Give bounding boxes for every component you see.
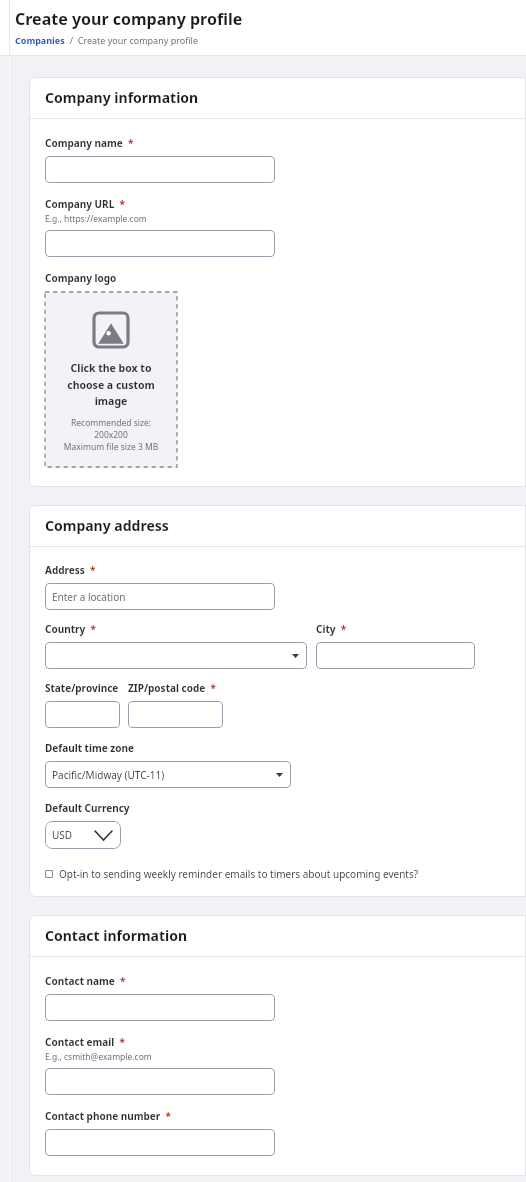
staticText: Company name * <box>45 136 134 150</box>
staticText: Address * <box>45 563 96 577</box>
staticText: Enter a location <box>52 590 126 604</box>
button[interactable] <box>45 1129 275 1156</box>
button[interactable] <box>45 994 275 1021</box>
button[interactable]: Choose a custom image <box>45 292 177 467</box>
button[interactable]: Opt-in to sending weekly reminder emails… <box>45 867 419 881</box>
staticText: Company address <box>45 516 169 535</box>
button[interactable] <box>128 701 223 728</box>
staticText: City * <box>316 622 347 636</box>
staticText: Company logo <box>45 271 117 285</box>
staticText: / Create your company profile <box>65 34 198 46</box>
staticText: Contact phone number * <box>45 1109 171 1123</box>
staticText: State/province <box>45 681 119 695</box>
staticText: Contact email * <box>45 1035 125 1049</box>
staticText: E.g., csmith@example.com <box>45 1051 152 1063</box>
staticText: Default Currency <box>45 801 130 815</box>
staticText: ZIP/postal code * <box>128 681 216 695</box>
staticText: Pacific/Midway (UTC-11) <box>52 768 165 782</box>
staticText: Company URL * <box>45 197 125 211</box>
staticText: Opt-in to sending weekly reminder emails… <box>59 867 419 881</box>
button[interactable]: Companies <box>15 34 65 46</box>
staticText: Recommended size: 200x200 Maximum file s… <box>56 417 166 453</box>
staticText: Click the box to choose a custom image <box>63 361 159 408</box>
button[interactable] <box>316 642 475 669</box>
staticText: Default time zone <box>45 741 134 755</box>
staticText: Contact information <box>45 926 188 945</box>
staticText: Create your company profile <box>15 8 243 30</box>
button[interactable] <box>45 1068 275 1095</box>
button[interactable]: Pacific/Midway (UTC-11) <box>45 761 291 788</box>
button[interactable] <box>45 701 120 728</box>
button[interactable]: USD <box>45 821 121 849</box>
staticText: Country * <box>45 622 96 636</box>
staticText: Company information <box>45 88 199 107</box>
staticText: Contact name * <box>45 974 126 988</box>
button[interactable]: Enter a location <box>45 583 275 610</box>
button[interactable] <box>45 642 307 669</box>
staticText: E.g., https://example.com <box>45 213 147 225</box>
button[interactable] <box>45 230 275 257</box>
staticText: USD <box>52 828 73 842</box>
button[interactable] <box>45 156 275 183</box>
